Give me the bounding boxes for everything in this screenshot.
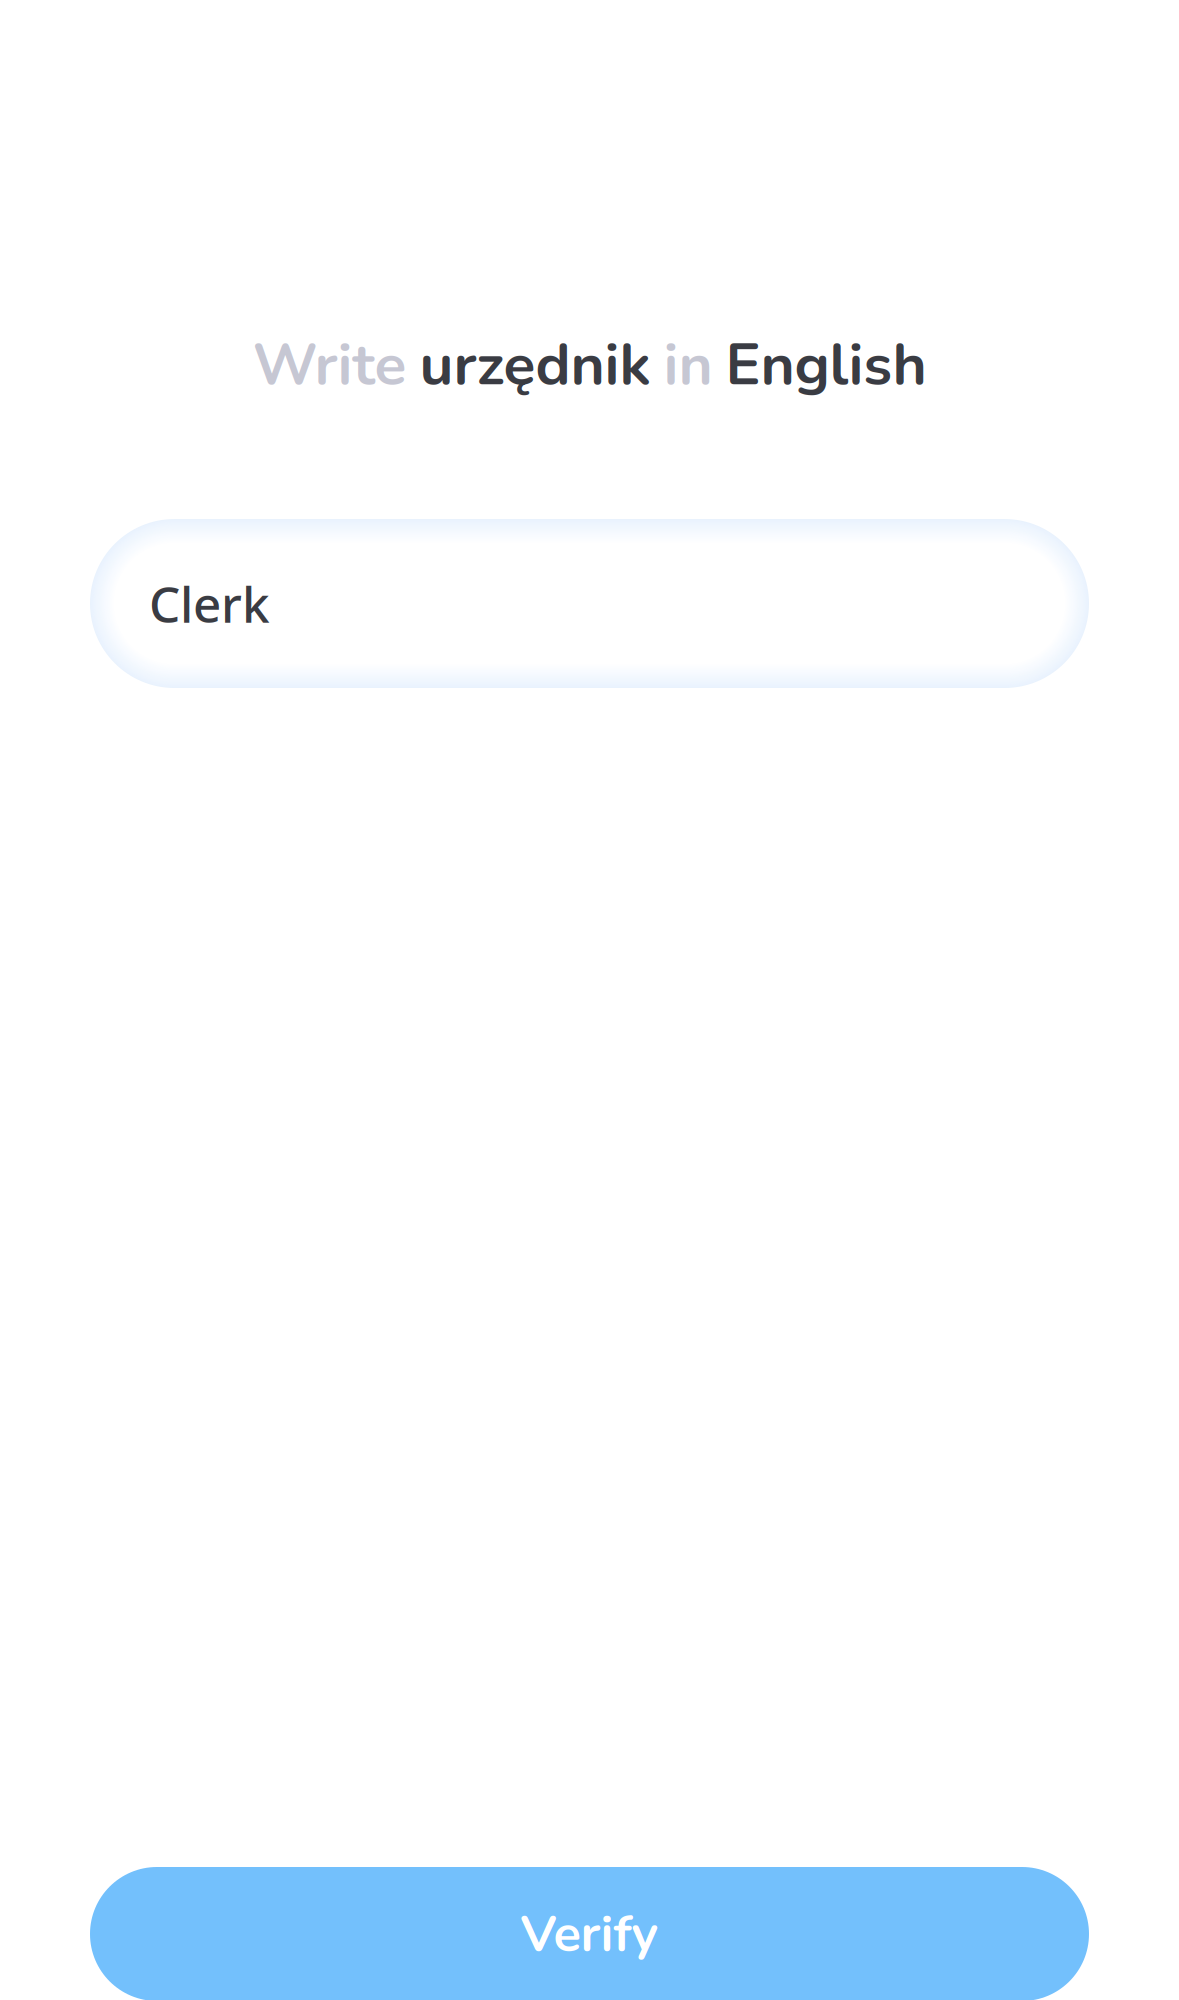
staticText: Clerk (149, 570, 270, 637)
staticText: in (663, 325, 712, 405)
staticText: urzędnik (419, 325, 650, 405)
button[interactable]: Clerk (90, 519, 1089, 688)
staticText: Verify (520, 1899, 658, 1968)
staticText: English (725, 325, 926, 405)
staticText: Write (252, 325, 406, 405)
button[interactable]: Verify (90, 1867, 1089, 2000)
